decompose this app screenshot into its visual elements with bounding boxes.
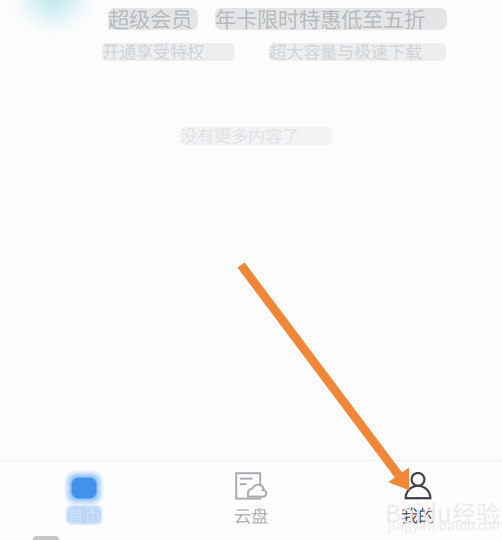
staticText: jingyan.baidu.com [388,515,502,534]
button[interactable]: 我的 [334,461,501,540]
staticText: Baidu经验 [385,495,500,530]
staticText: 开通享受特权 [102,38,204,64]
staticText: 超大容量与极速下载 [269,38,422,64]
staticText: 我的 [401,502,435,528]
staticText: 年卡限时特惠低至五折 [215,3,425,33]
staticText: 超级会员 [108,3,192,33]
staticText: 首页 [67,502,101,528]
staticText: 云盘 [234,502,268,528]
button[interactable]: 云盘 [167,461,334,540]
button[interactable]: 首页 [0,461,167,540]
staticText: 没有更多内容了 [180,122,299,148]
